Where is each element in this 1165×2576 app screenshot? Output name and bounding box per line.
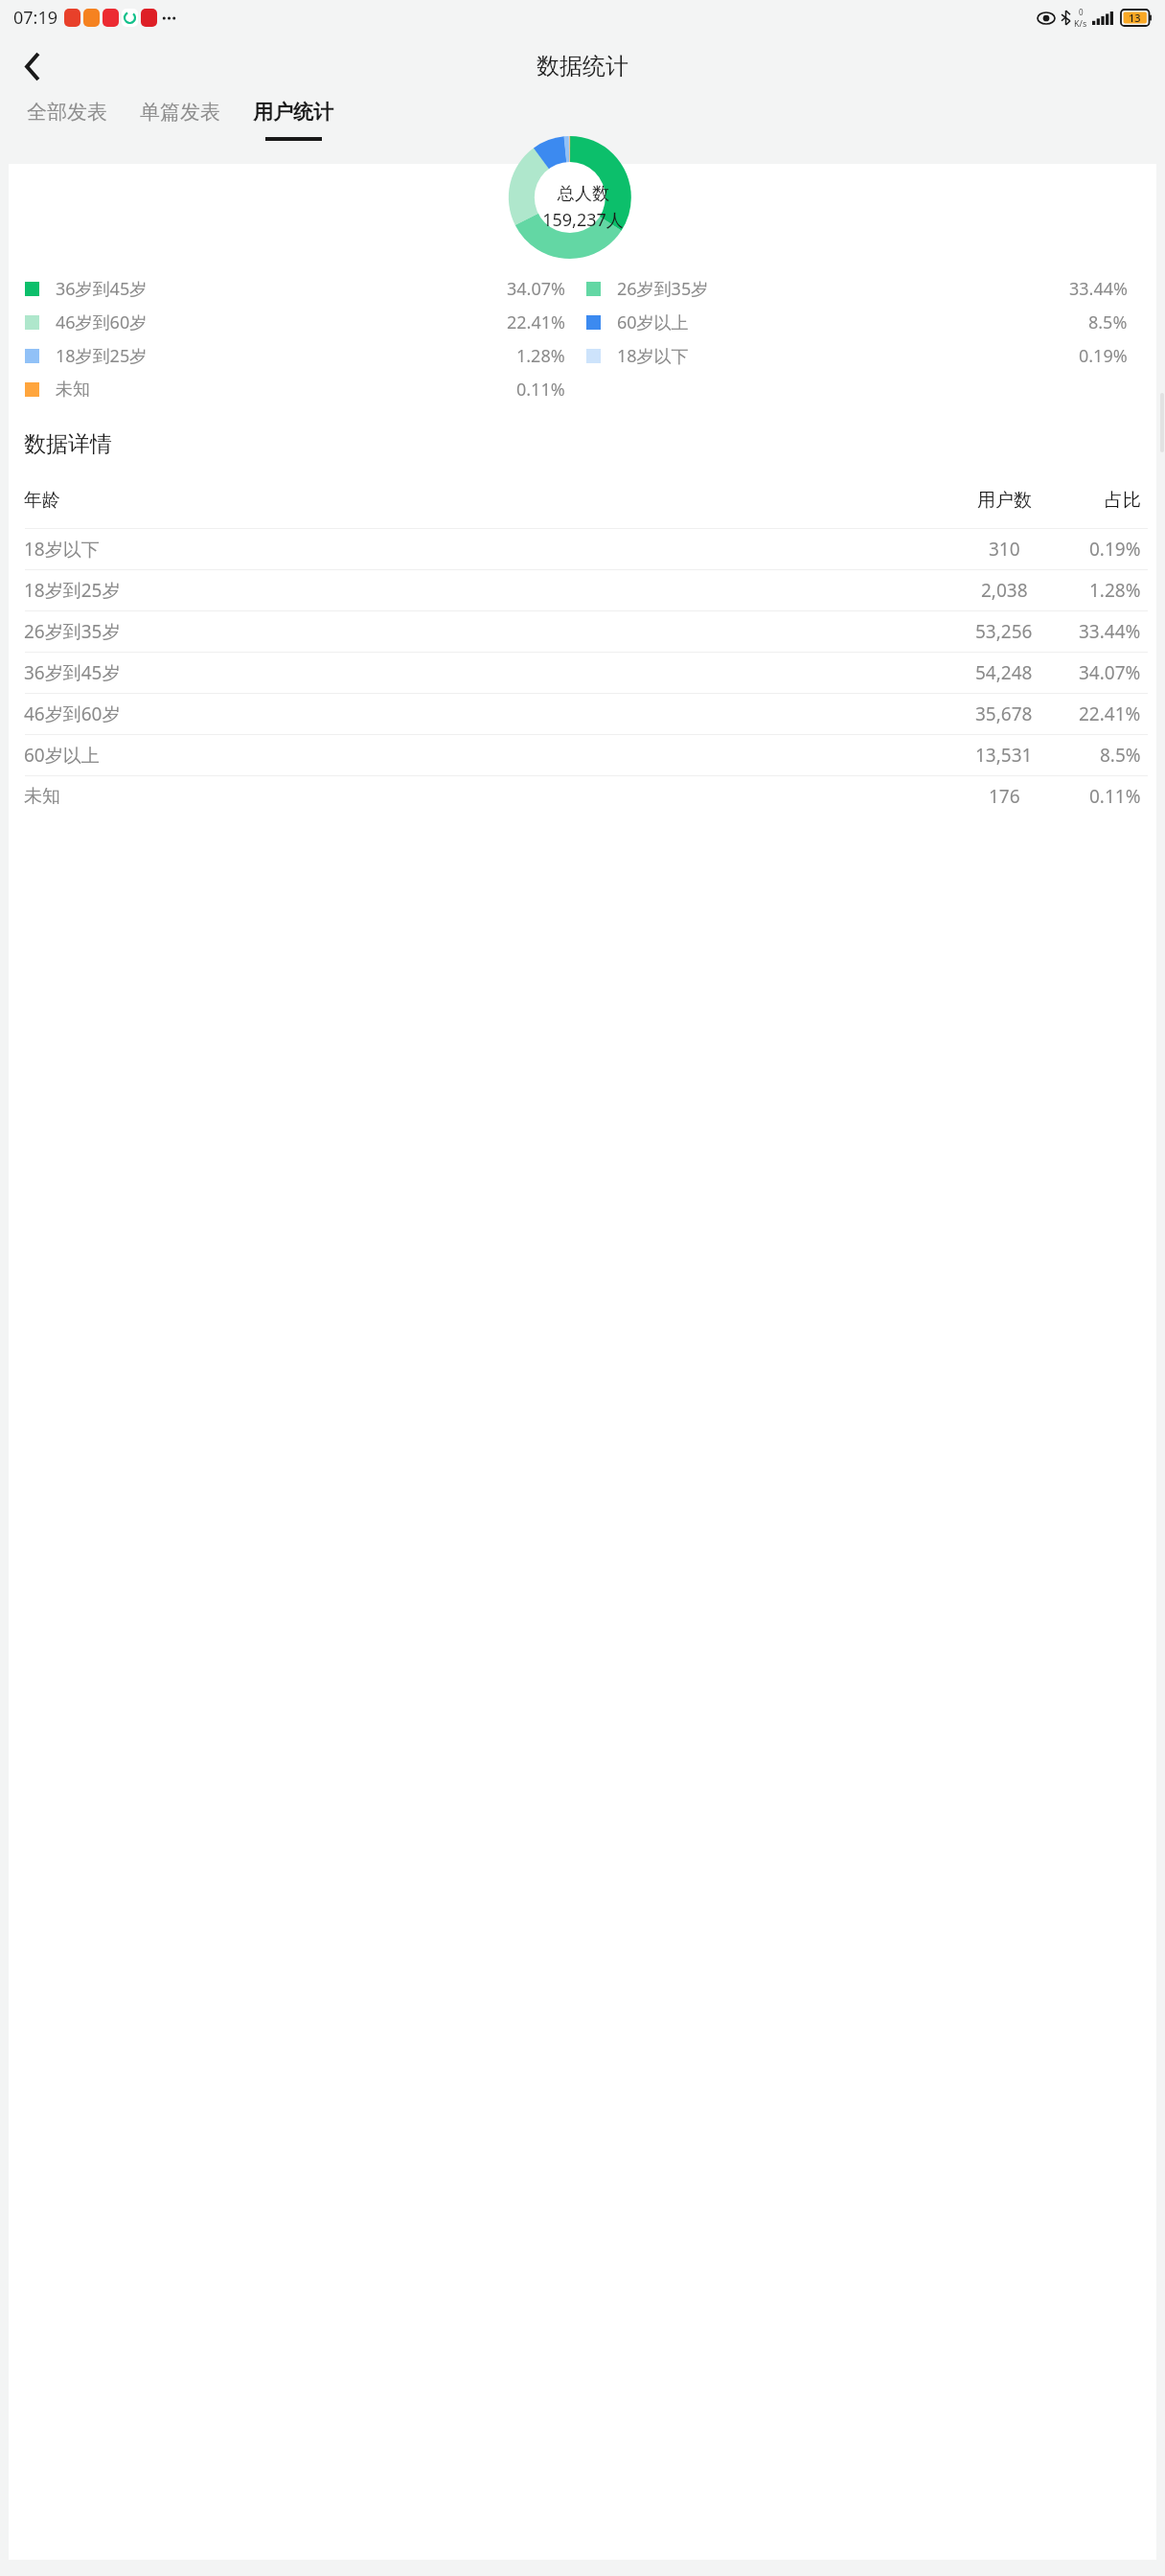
button[interactable]: Back: [6, 39, 59, 93]
button[interactable]: 18岁到25岁: [9, 570, 1156, 610]
staticText: 18岁以下: [617, 344, 689, 368]
staticText: 33.44%: [1079, 619, 1141, 644]
staticText: 0: [1079, 7, 1084, 17]
staticText: 用户数: [977, 489, 1032, 512]
staticText: 35,678: [975, 701, 1033, 726]
staticText: 26岁到35岁: [24, 619, 121, 644]
button[interactable]: 未知: [9, 776, 1156, 816]
staticText: 总人数: [558, 183, 609, 205]
staticText: 年龄: [24, 489, 60, 512]
staticText: 60岁以上: [24, 743, 100, 768]
staticText: 176: [989, 784, 1020, 809]
button[interactable]: 36岁到45岁: [9, 653, 1156, 693]
button[interactable]: 全部发表: [11, 96, 124, 145]
staticText: 用户统计: [253, 100, 333, 125]
staticText: 53,256: [975, 619, 1033, 644]
staticText: 22.41%: [1079, 701, 1141, 726]
button[interactable]: 46岁到60岁: [9, 694, 1156, 734]
staticText: 60岁以上: [617, 310, 689, 334]
button[interactable]: 单篇发表: [124, 96, 237, 145]
staticText: 22.41%: [507, 310, 565, 334]
button[interactable]: 60岁以上: [9, 735, 1156, 775]
staticText: 未知: [24, 785, 60, 808]
staticText: 07:19: [13, 6, 58, 30]
staticText: 全部发表: [27, 100, 107, 125]
staticText: 18岁到25岁: [24, 578, 121, 603]
staticText: 0.11%: [516, 378, 565, 402]
staticText: 46岁到60岁: [24, 701, 121, 726]
staticText: 26岁到35岁: [617, 277, 709, 301]
button[interactable]: 18岁以下: [9, 529, 1156, 569]
staticText: 0.11%: [1089, 784, 1141, 809]
staticText: 未知: [56, 379, 90, 401]
staticText: 34.07%: [507, 277, 565, 301]
staticText: 2,038: [981, 578, 1028, 603]
staticText: 8.5%: [1100, 743, 1141, 768]
staticText: 0.19%: [1079, 344, 1128, 368]
staticText: 数据详情: [24, 430, 112, 458]
staticText: 18岁到25岁: [56, 344, 148, 368]
staticText: 8.5%: [1088, 310, 1128, 334]
staticText: 数据统计: [537, 52, 628, 80]
staticText: 34.07%: [1079, 660, 1141, 685]
staticText: 54,248: [975, 660, 1033, 685]
staticText: 159,237人: [542, 208, 624, 232]
staticText: 13: [1129, 11, 1141, 25]
staticText: 单篇发表: [140, 100, 220, 125]
button[interactable]: 26岁到35岁: [9, 611, 1156, 652]
button[interactable]: 用户统计: [237, 96, 350, 145]
staticText: 18岁以下: [24, 537, 100, 562]
staticText: 0.19%: [1089, 537, 1141, 562]
staticText: 13,531: [975, 743, 1033, 768]
staticText: 36岁到45岁: [24, 660, 121, 685]
staticText: 占比: [1105, 489, 1141, 512]
staticText: K/s: [1074, 17, 1087, 29]
staticText: 36岁到45岁: [56, 277, 148, 301]
staticText: 1.28%: [516, 344, 565, 368]
staticText: 46岁到60岁: [56, 310, 148, 334]
staticText: 33.44%: [1069, 277, 1128, 301]
staticText: 1.28%: [1089, 578, 1141, 603]
staticText: 310: [989, 537, 1020, 562]
